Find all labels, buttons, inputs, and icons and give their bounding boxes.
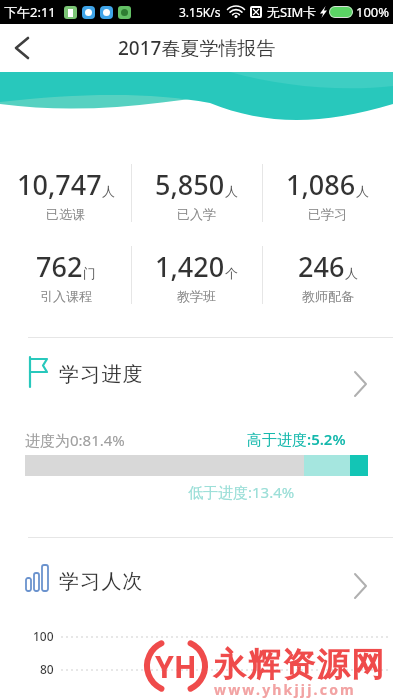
staticText: 1,420 <box>155 248 225 285</box>
staticText: 人 <box>356 183 369 199</box>
staticText: 人 <box>225 183 238 199</box>
staticText: 个 <box>225 265 238 281</box>
staticText: www.yhkjjj.com <box>214 680 356 699</box>
staticText: 引入课程 <box>40 288 92 304</box>
staticText: 5,850 <box>155 166 225 203</box>
staticText: 进度为0:81.4% <box>25 430 125 450</box>
staticText: 1,086 <box>286 166 356 203</box>
staticText: 已选课 <box>46 206 85 222</box>
button[interactable] <box>0 24 44 72</box>
staticText: 低于进度:13.4% <box>188 482 295 502</box>
staticText: 学习人次 <box>59 569 144 594</box>
button[interactable]: 学习人次 <box>0 562 393 600</box>
staticText: YH <box>155 646 197 687</box>
staticText: 学习进度 <box>59 362 144 387</box>
staticText: 门 <box>83 265 96 281</box>
staticText: 762 <box>36 248 83 285</box>
staticText: 246 <box>298 248 345 285</box>
staticText: 80 <box>40 661 54 677</box>
staticText: 教师配备 <box>302 288 354 304</box>
staticText: 人 <box>102 183 115 199</box>
staticText: 永辉资源网 <box>213 644 386 686</box>
staticText: 无SIM卡 <box>267 3 317 21</box>
staticText: 高于进度:5.2% <box>247 429 346 449</box>
staticText: 2017春夏学情报告 <box>118 35 276 61</box>
staticText: 10,747 <box>17 166 102 203</box>
button[interactable]: 学习进度 <box>0 355 393 393</box>
staticText: 3.15K/s <box>179 4 221 20</box>
staticText: 已入学 <box>177 206 216 222</box>
staticText: 100 <box>33 628 54 644</box>
staticText: 100% <box>356 3 390 21</box>
staticText: 下午2:11 <box>4 3 56 21</box>
staticText: 教学班 <box>177 288 216 304</box>
staticText: 已学习 <box>308 206 347 222</box>
staticText: 人 <box>345 265 358 281</box>
